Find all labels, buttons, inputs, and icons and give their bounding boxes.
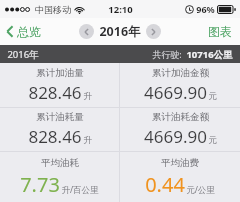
staticText: 4669.90 bbox=[144, 81, 207, 104]
staticText: 4669.90 bbox=[144, 125, 207, 148]
staticText: 升 bbox=[83, 135, 92, 146]
staticText: 累计油耗量 bbox=[36, 111, 84, 123]
staticText: 0.44 bbox=[145, 171, 185, 198]
button[interactable]: 平均油耗 bbox=[0, 152, 119, 202]
staticText: 图表 bbox=[208, 24, 232, 39]
staticText: 升/百公里 bbox=[61, 184, 99, 196]
staticText: 828.46 bbox=[28, 125, 82, 148]
button[interactable]: 累计加油金额 bbox=[120, 63, 240, 107]
button[interactable]: 累计油耗量 bbox=[0, 108, 119, 151]
staticText: 总览 bbox=[17, 24, 41, 39]
staticText: 10716公里 bbox=[186, 48, 233, 61]
staticText: 7.73 bbox=[20, 171, 60, 198]
button[interactable]: 总览 bbox=[0, 18, 49, 45]
staticText: 累计加油量 bbox=[36, 67, 84, 79]
staticText: 12:10 bbox=[108, 3, 133, 16]
staticText: 平均油费 bbox=[161, 157, 199, 169]
staticText: 中国移动 bbox=[35, 4, 71, 15]
button[interactable]: 平均油费 bbox=[120, 152, 240, 202]
button[interactable]: 累计油耗金额 bbox=[120, 108, 240, 151]
staticText: 累计加油金额 bbox=[152, 67, 209, 79]
staticText: 共行驶: bbox=[152, 48, 182, 60]
staticText: 96% bbox=[196, 3, 215, 15]
staticText: 累计油耗金额 bbox=[152, 111, 209, 123]
staticText: 元 bbox=[208, 91, 217, 102]
button[interactable]: 图表 bbox=[200, 18, 240, 45]
staticText: 元 bbox=[208, 135, 217, 146]
staticText: 2016年 bbox=[7, 48, 39, 61]
button[interactable]: 累计加油量 bbox=[0, 63, 119, 107]
staticText: 平均油耗 bbox=[41, 157, 79, 169]
button[interactable]: Next year bbox=[146, 24, 161, 39]
staticText: 828.46 bbox=[28, 81, 82, 104]
staticText: 2016年 bbox=[99, 23, 141, 40]
button[interactable]: Previous year bbox=[79, 24, 94, 39]
staticText: 升 bbox=[83, 91, 92, 102]
staticText: 元/公里 bbox=[186, 184, 215, 196]
